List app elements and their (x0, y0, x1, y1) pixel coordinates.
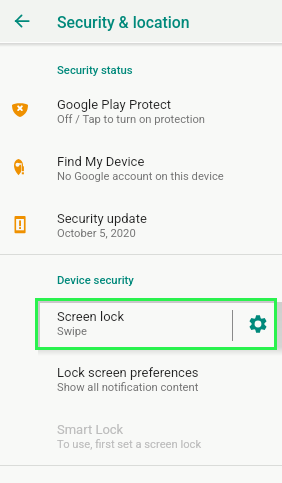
staticText: Find My Device (57, 154, 145, 169)
button[interactable]: Lock screen preferences (0, 354, 282, 404)
staticText: Off / Tap to turn on protection (57, 113, 205, 126)
staticText: Lock screen preferences (57, 365, 199, 380)
staticText: Smart Lock (57, 422, 124, 437)
staticText: No Google account on this device (57, 170, 224, 183)
staticText: Google Play Protect (57, 97, 172, 112)
staticText: To use, first set a screen lock (57, 438, 202, 451)
button[interactable]: Find My Device (0, 143, 282, 193)
staticText: Show all notification content (57, 381, 199, 394)
button[interactable]: Smart Lock (0, 411, 282, 461)
staticText: Security status (57, 64, 133, 77)
button[interactable]: Google Play Protect (0, 86, 282, 136)
staticText: Swipe (57, 325, 87, 338)
staticText: Security update (57, 211, 147, 226)
button[interactable]: Screen lock (40, 303, 232, 347)
button[interactable]: Device security (0, 270, 282, 290)
button[interactable]: Screen lock settings (233, 303, 274, 347)
button[interactable]: Security update (0, 200, 282, 250)
staticText: Screen lock (57, 309, 124, 324)
staticText: Security & location (57, 13, 190, 32)
staticText: Device security (57, 274, 134, 287)
staticText: October 5, 2020 (57, 227, 136, 240)
button[interactable]: Back (8, 7, 35, 34)
button[interactable]: Security status (0, 60, 282, 80)
